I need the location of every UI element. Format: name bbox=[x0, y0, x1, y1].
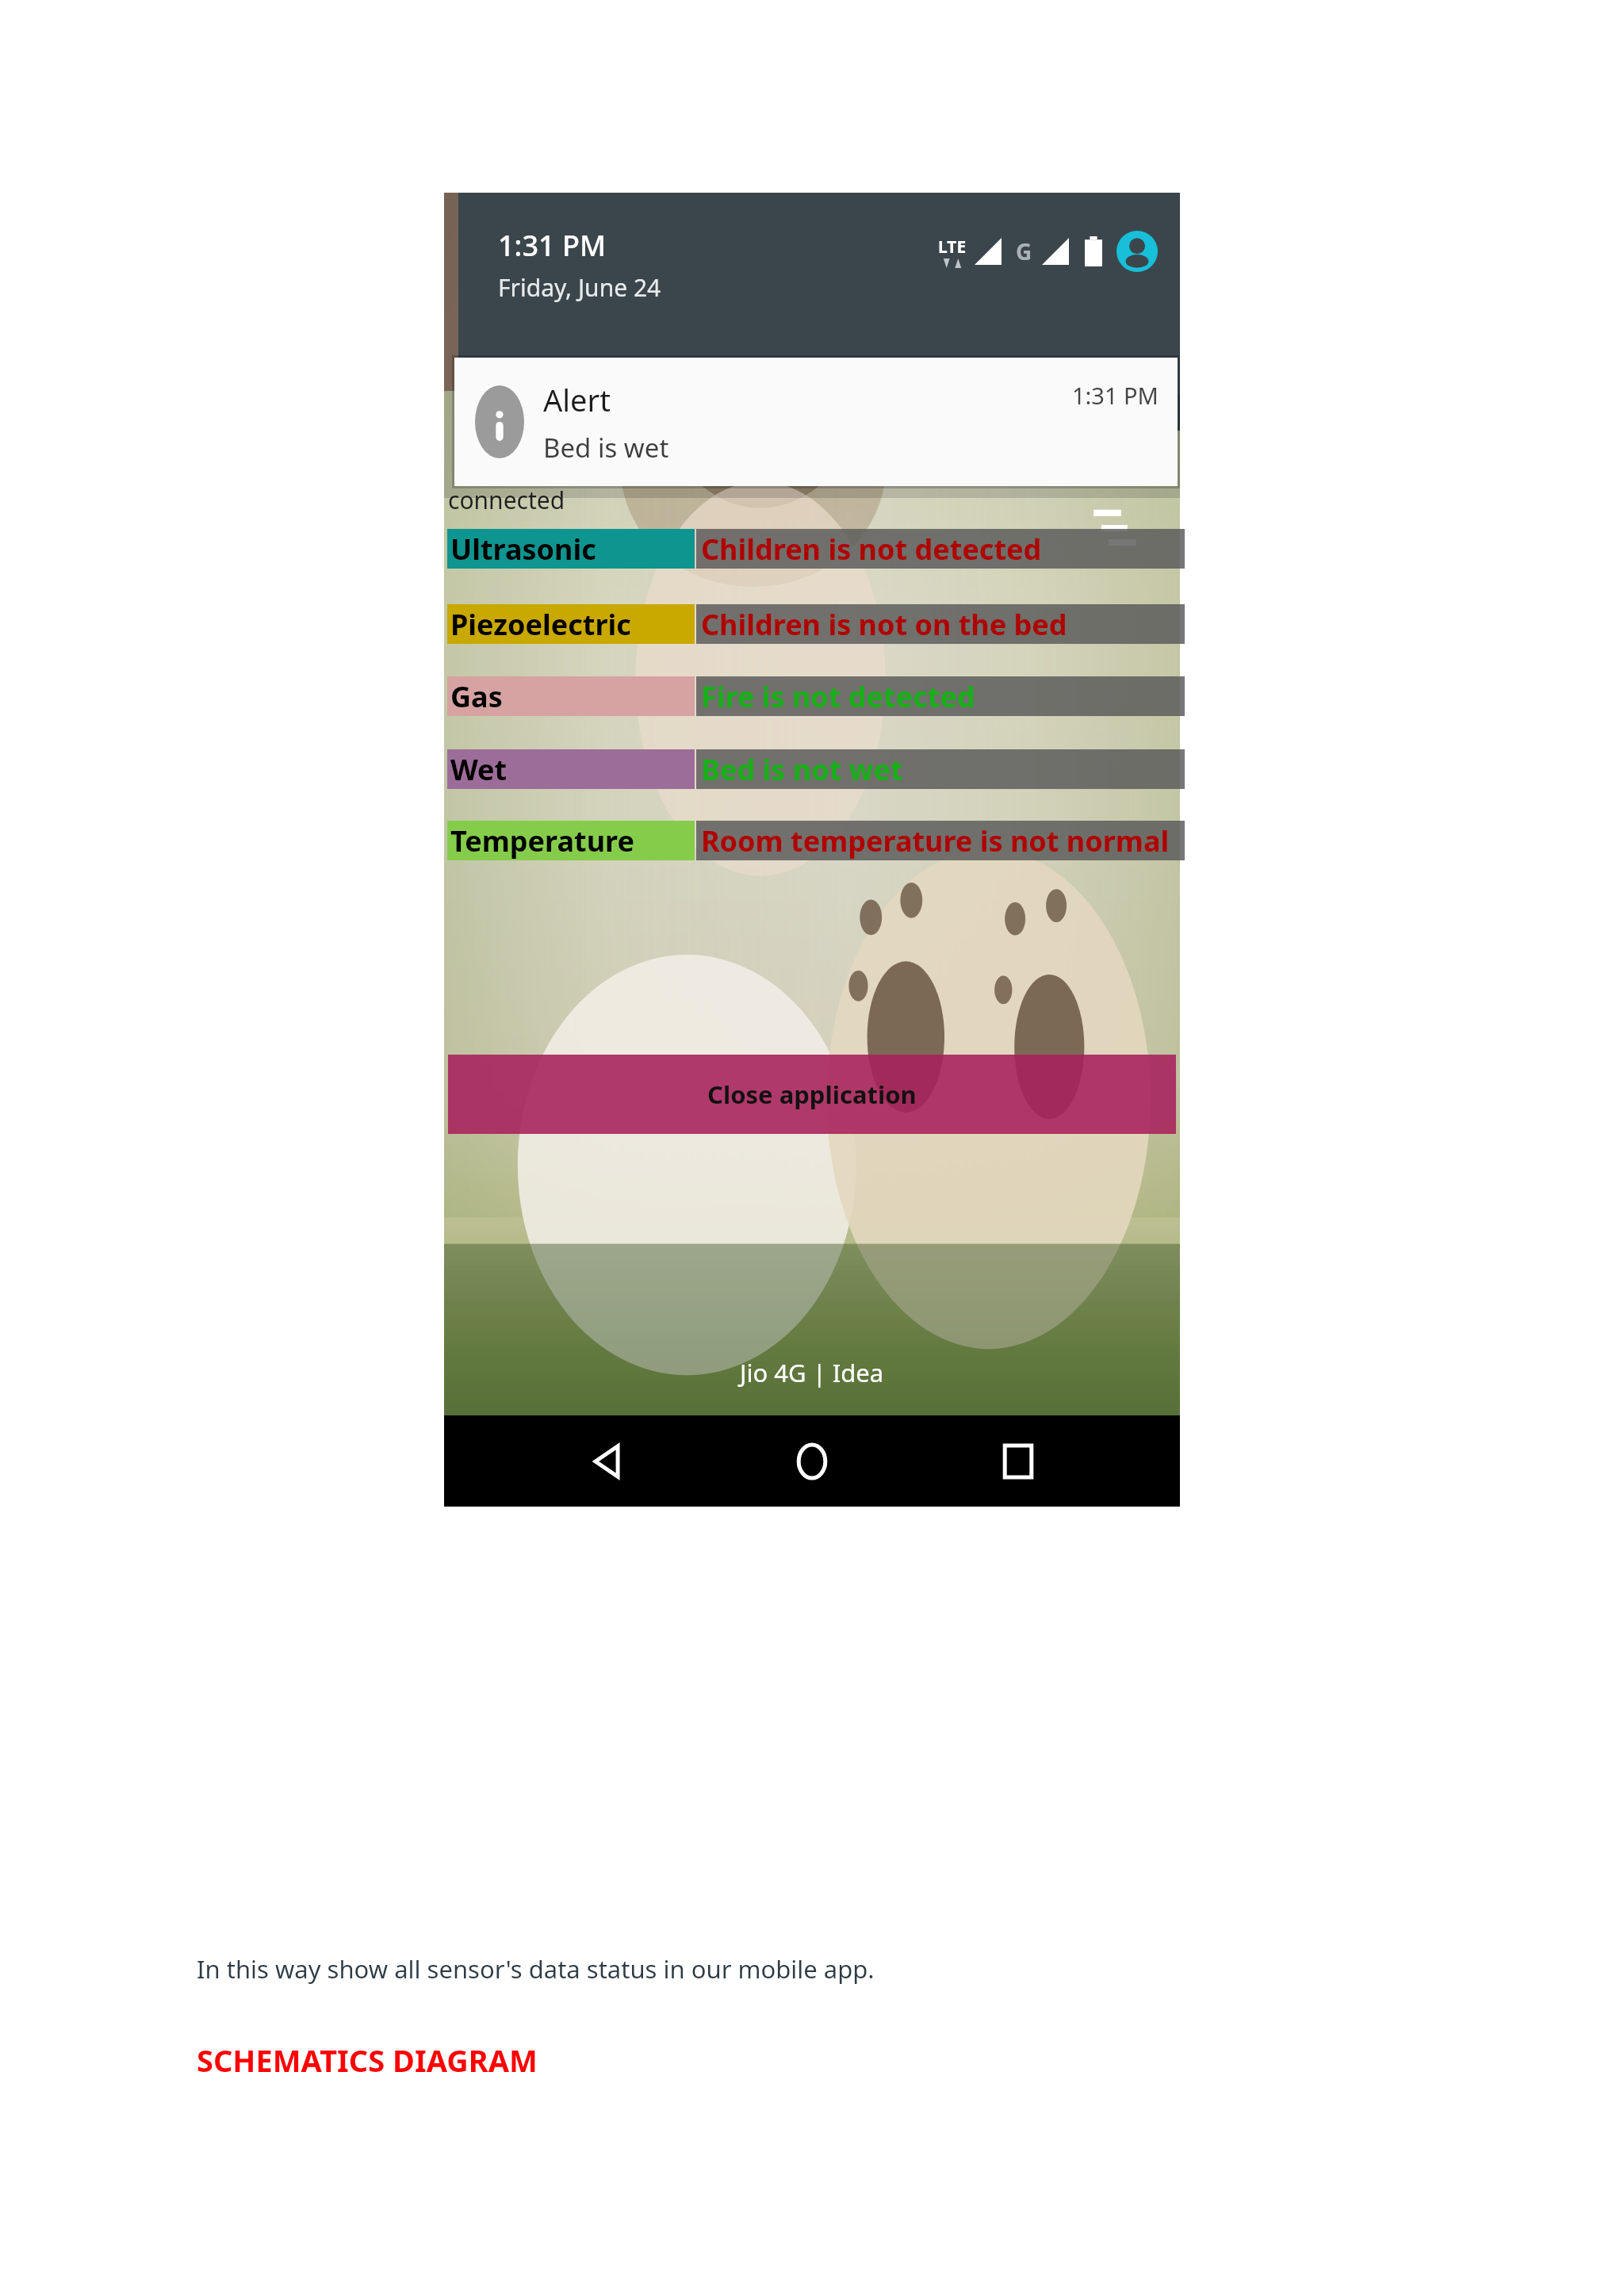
button[interactable]: Alert bbox=[454, 358, 1178, 486]
staticText: Room temperature is not normal bbox=[701, 821, 1170, 860]
button[interactable]: Gas bbox=[444, 676, 1180, 716]
staticText: Fire is not detected bbox=[701, 677, 975, 716]
staticText: Bed is not wet bbox=[701, 750, 903, 789]
button[interactable]: Home bbox=[768, 1418, 856, 1505]
staticText: Baby Monitoring System bbox=[599, 313, 1025, 361]
button[interactable]: Back bbox=[563, 1418, 650, 1505]
staticText: Friday, June 24 bbox=[498, 271, 661, 304]
button[interactable]: Menu bbox=[1093, 506, 1140, 553]
staticText: In this way show all sensor's data statu… bbox=[197, 1952, 875, 1986]
button[interactable]: Temperature bbox=[444, 821, 1180, 860]
staticText: LTE bbox=[938, 236, 967, 259]
staticText: Jio 4G | Idea bbox=[740, 1356, 884, 1389]
button[interactable]: Ultrasonic bbox=[444, 529, 1180, 569]
button[interactable]: Close application bbox=[448, 1055, 1176, 1134]
staticText: SCHEMATICS DIAGRAM bbox=[197, 2039, 538, 2081]
staticText: G bbox=[1016, 236, 1032, 266]
staticText: 1:31 PM bbox=[1072, 380, 1159, 411]
staticText: Children is not detected bbox=[701, 530, 1042, 569]
staticText: connected bbox=[448, 484, 565, 516]
staticText: Temperature bbox=[450, 821, 634, 860]
staticText: Ultrasonic bbox=[450, 530, 596, 569]
staticText: 1:31 PM bbox=[498, 226, 606, 265]
staticText: Gas bbox=[450, 677, 503, 716]
staticText: Alert bbox=[543, 379, 611, 420]
staticText: Children is not on the bed bbox=[701, 605, 1067, 644]
staticText: Piezoelectric bbox=[450, 605, 631, 644]
button[interactable]: Wet bbox=[444, 749, 1180, 789]
button[interactable]: User account bbox=[1116, 231, 1158, 272]
staticText: Close application bbox=[707, 1078, 917, 1111]
button[interactable]: Recent apps bbox=[975, 1418, 1062, 1505]
staticText: Bed is wet bbox=[543, 430, 669, 465]
staticText: Wet bbox=[450, 750, 507, 789]
button[interactable]: Piezoelectric bbox=[444, 604, 1180, 644]
